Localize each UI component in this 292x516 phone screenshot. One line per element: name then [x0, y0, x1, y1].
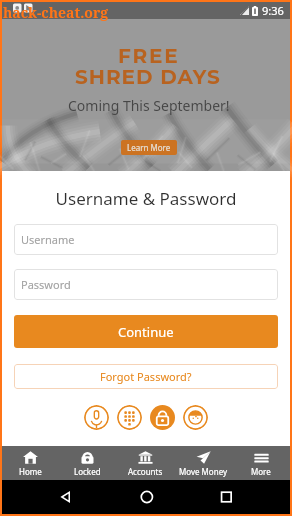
- staticText: Coming This September!: [68, 96, 230, 115]
- button[interactable]: Move Money: [174, 446, 232, 480]
- button[interactable]: Password: [14, 269, 278, 300]
- staticText: Move Money: [179, 466, 228, 477]
- button[interactable]: Username: [14, 224, 278, 255]
- staticText: Learn More: [127, 142, 171, 153]
- staticText: Username: [21, 232, 75, 247]
- staticText: Accounts: [128, 466, 163, 477]
- staticText: More: [251, 466, 271, 477]
- staticText: SHRED DAYS: [75, 65, 221, 89]
- staticText: Home: [19, 466, 42, 477]
- button[interactable]: Face login: [183, 405, 208, 430]
- staticText: Continue: [118, 323, 174, 341]
- button[interactable]: More: [232, 446, 290, 480]
- staticText: Username & Password: [2, 187, 290, 210]
- staticText: hack-cheat.org: [3, 3, 109, 22]
- staticText: Locked: [74, 466, 101, 477]
- button[interactable]: Locked login: [150, 405, 175, 430]
- staticText: Forgot Password?: [100, 369, 192, 384]
- staticText: 9:36: [262, 3, 284, 18]
- staticText: FREE: [118, 44, 180, 68]
- button[interactable]: Voice login: [84, 405, 109, 430]
- button[interactable]: Accounts: [116, 446, 174, 480]
- button[interactable]: Learn More: [121, 140, 177, 155]
- button[interactable]: Locked: [59, 446, 116, 480]
- button[interactable]: Forgot Password?: [14, 364, 278, 389]
- staticText: Password: [21, 277, 71, 292]
- button[interactable]: PIN login: [117, 405, 142, 430]
- button[interactable]: Home: [2, 446, 59, 480]
- button[interactable]: Continue: [14, 315, 278, 348]
